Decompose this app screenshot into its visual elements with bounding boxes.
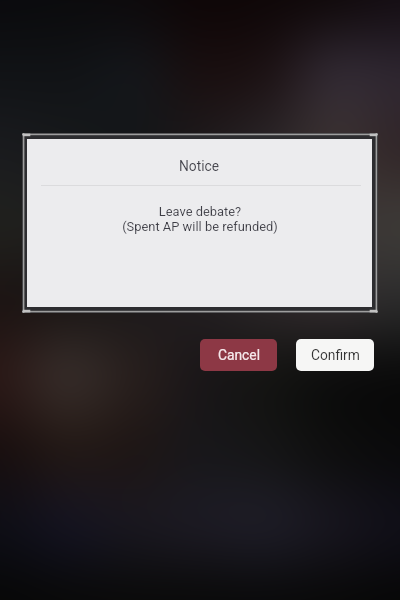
staticText: Leave debate? (Spent AP will be refunded… xyxy=(122,204,278,234)
button[interactable]: Cancel xyxy=(200,339,277,371)
staticText: Confirm xyxy=(311,347,360,363)
staticText: Notice xyxy=(179,158,220,174)
button[interactable]: Confirm xyxy=(296,339,374,371)
staticText: Cancel xyxy=(218,347,260,363)
